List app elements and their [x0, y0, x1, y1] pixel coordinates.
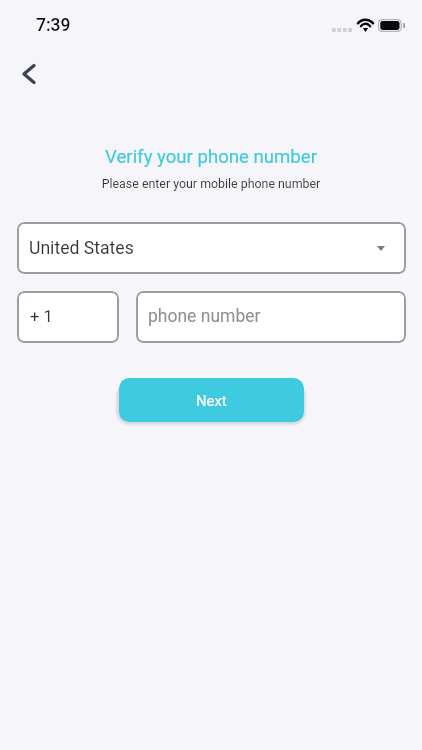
button[interactable]: + 1 [17, 291, 119, 343]
button[interactable]: Next [119, 378, 304, 422]
staticText: phone number [148, 306, 261, 327]
staticText: Please enter your mobile phone number [0, 176, 422, 191]
staticText: Next [196, 392, 227, 409]
staticText: 7:39 [36, 15, 71, 36]
staticText: United States [29, 238, 134, 259]
button[interactable]: phone number [136, 291, 406, 343]
staticText: + 1 [30, 307, 53, 326]
staticText: Verify your phone number [0, 146, 422, 168]
button[interactable]: United States [17, 222, 406, 274]
button[interactable]: Back [9, 54, 49, 94]
